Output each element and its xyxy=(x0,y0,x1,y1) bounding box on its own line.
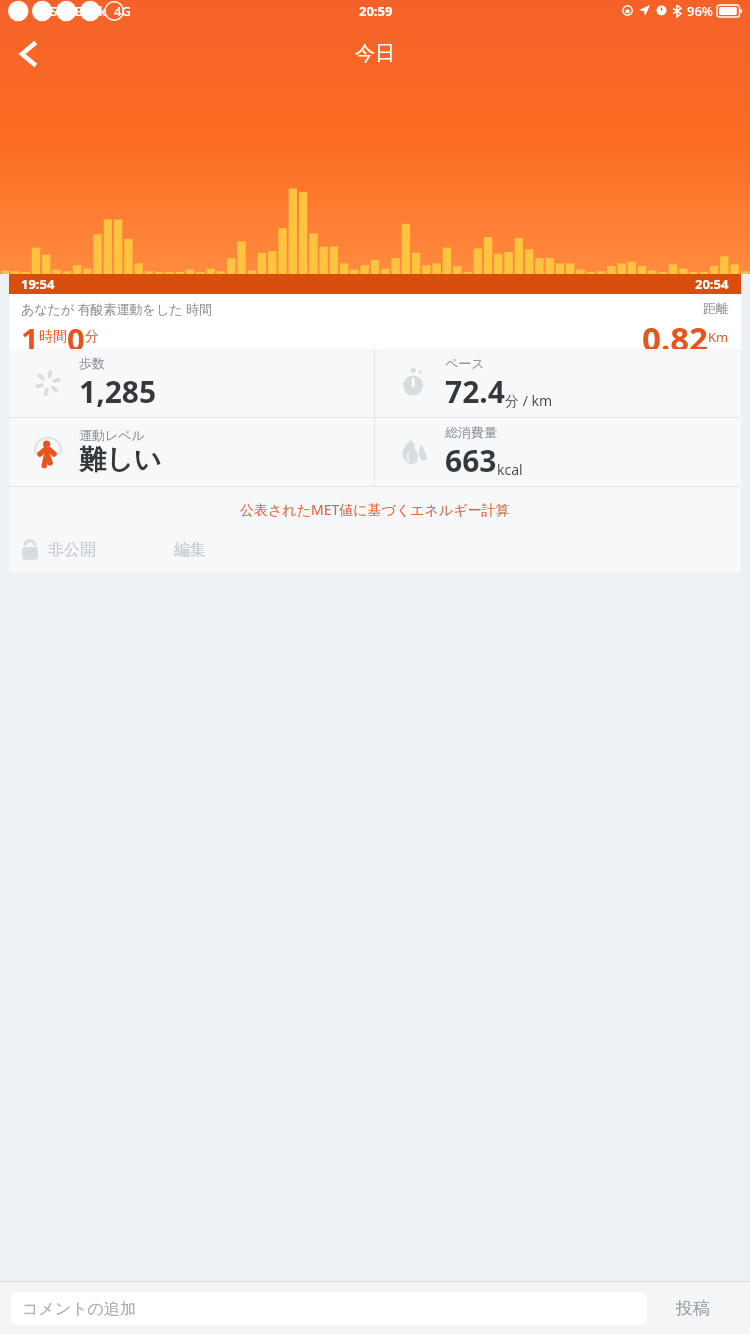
button[interactable]: 編集 xyxy=(174,540,206,560)
staticText: 20:54 xyxy=(695,275,729,293)
staticText: kcal xyxy=(497,460,523,479)
staticText: 運動レベル xyxy=(79,427,145,443)
staticText: 0 xyxy=(67,318,85,349)
staticText: 1 xyxy=(21,318,39,349)
staticText: 歩数 xyxy=(79,355,105,371)
staticText: あなたが 有酸素運動をした 時間 xyxy=(21,300,212,318)
staticText: 663 xyxy=(445,440,497,481)
staticText: SoftBank xyxy=(50,2,107,20)
button[interactable]: 総消費量 xyxy=(375,418,741,486)
staticText: 公表されたMET値に基づくエネルギー計算 xyxy=(240,500,510,519)
button[interactable]: あなたが 有酸素運動をした 時間 xyxy=(9,294,741,349)
staticText: 編集 xyxy=(174,540,206,560)
button[interactable]: 非公開 xyxy=(21,539,96,561)
button[interactable]: Back xyxy=(0,21,54,86)
staticText: 1,285 xyxy=(79,371,157,412)
button[interactable]: 運動レベル xyxy=(9,418,374,486)
staticText: 96% xyxy=(687,2,713,20)
button[interactable]: 投稿 xyxy=(647,1288,739,1328)
staticText: 分 xyxy=(85,328,99,346)
staticText: 距離 xyxy=(703,300,729,316)
staticText: 72.4 xyxy=(445,371,505,412)
staticText: 今日 xyxy=(355,41,395,66)
staticText: 時間 xyxy=(39,328,67,346)
staticText: 分 / km xyxy=(505,391,553,410)
button[interactable]: コメントの追加 xyxy=(22,1292,636,1325)
staticText: ペース xyxy=(445,355,485,371)
button[interactable]: 歩数 xyxy=(9,349,374,417)
staticText: 投稿 xyxy=(676,1298,710,1319)
staticText: Km xyxy=(708,328,729,346)
button[interactable]: 公表されたMET値に基づくエネルギー計算 xyxy=(9,500,741,519)
staticText: 4G xyxy=(114,2,131,20)
staticText: 0.82 xyxy=(642,316,708,349)
staticText: 総消費量 xyxy=(445,424,497,440)
staticText: 難しい xyxy=(79,443,162,477)
staticText: 非公開 xyxy=(48,540,96,560)
button[interactable]: ペース xyxy=(375,349,741,417)
staticText: 20:59 xyxy=(359,2,393,20)
staticText: 19:54 xyxy=(21,275,55,293)
staticText: コメントの追加 xyxy=(22,1299,136,1319)
